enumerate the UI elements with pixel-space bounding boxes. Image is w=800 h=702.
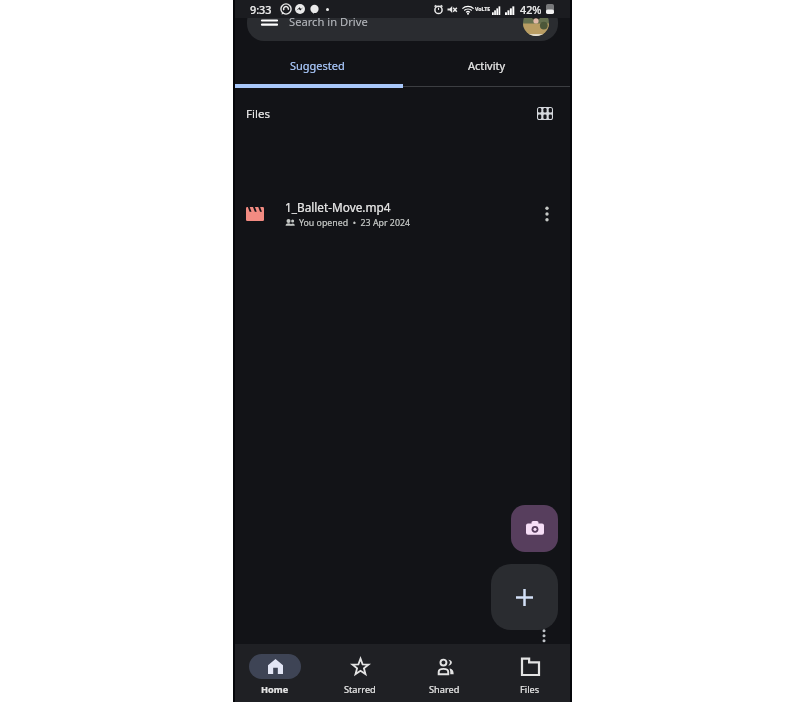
staticText: Activity	[468, 58, 506, 73]
staticText: Files	[520, 683, 540, 696]
staticText: Home	[261, 683, 289, 696]
button[interactable]: Suggested	[233, 46, 402, 85]
button[interactable]: Starred	[317, 644, 402, 702]
button[interactable]: Scan document	[511, 505, 558, 552]
staticText: 1_Ballet-Move.mp4	[285, 199, 391, 215]
button[interactable]: 1_Ballet-Move.mp4	[233, 190, 572, 238]
staticText: Suggested	[290, 58, 345, 73]
button[interactable]: Files	[487, 644, 572, 702]
staticText: Shared	[429, 683, 460, 696]
button[interactable]: Activity	[402, 46, 572, 85]
staticText: 42%	[520, 2, 542, 17]
staticText: You opened • 23 Apr 2024	[299, 217, 410, 229]
button[interactable]: Account	[523, 10, 549, 36]
button[interactable]: Search in Drive	[247, 5, 558, 41]
button[interactable]: More options	[533, 200, 561, 228]
staticText: Search in Drive	[289, 14, 368, 29]
button[interactable]: Shared	[402, 644, 487, 702]
button[interactable]: New	[491, 564, 558, 630]
staticText: VoLTE	[475, 5, 491, 12]
button[interactable]: Home	[233, 644, 317, 702]
staticText: Files	[246, 106, 270, 122]
staticText: 9:33	[250, 2, 272, 17]
staticText: Starred	[344, 683, 376, 696]
button[interactable]: Switch to grid view	[531, 99, 559, 127]
